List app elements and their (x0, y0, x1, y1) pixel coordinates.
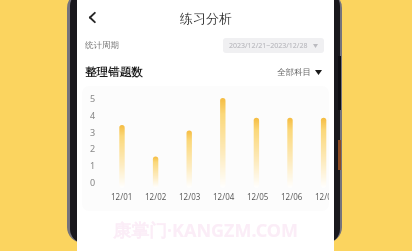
staticText: 4 (90, 109, 96, 121)
staticText: 2023/12/21~2023/12/28 (229, 41, 308, 51)
button[interactable]: 2023/12/21~2023/12/28 (223, 38, 324, 53)
button[interactable]: 全部科目 (275, 65, 324, 80)
staticText: 0 (90, 176, 96, 188)
staticText: 练习分析 (180, 10, 232, 26)
staticText: 12/02 (145, 191, 167, 202)
staticText: 12/04 (213, 191, 235, 202)
staticText: 12/07 (315, 191, 329, 202)
staticText: 1 (90, 159, 96, 171)
staticText: 2 (90, 142, 96, 154)
staticText: 全部科目 (277, 67, 311, 78)
staticText: 12/01 (111, 191, 133, 202)
staticText: 3 (90, 126, 96, 138)
staticText: 12/03 (179, 191, 201, 202)
staticText: 康掌门·KANGZM.COM (77, 218, 334, 243)
staticText: 12/06 (281, 191, 303, 202)
staticText: 整理错题数 (85, 65, 143, 79)
staticText: 统计周期 (85, 40, 119, 51)
staticText: 5 (90, 92, 96, 104)
staticText: 12/05 (247, 191, 269, 202)
button[interactable]: Back (79, 4, 105, 30)
